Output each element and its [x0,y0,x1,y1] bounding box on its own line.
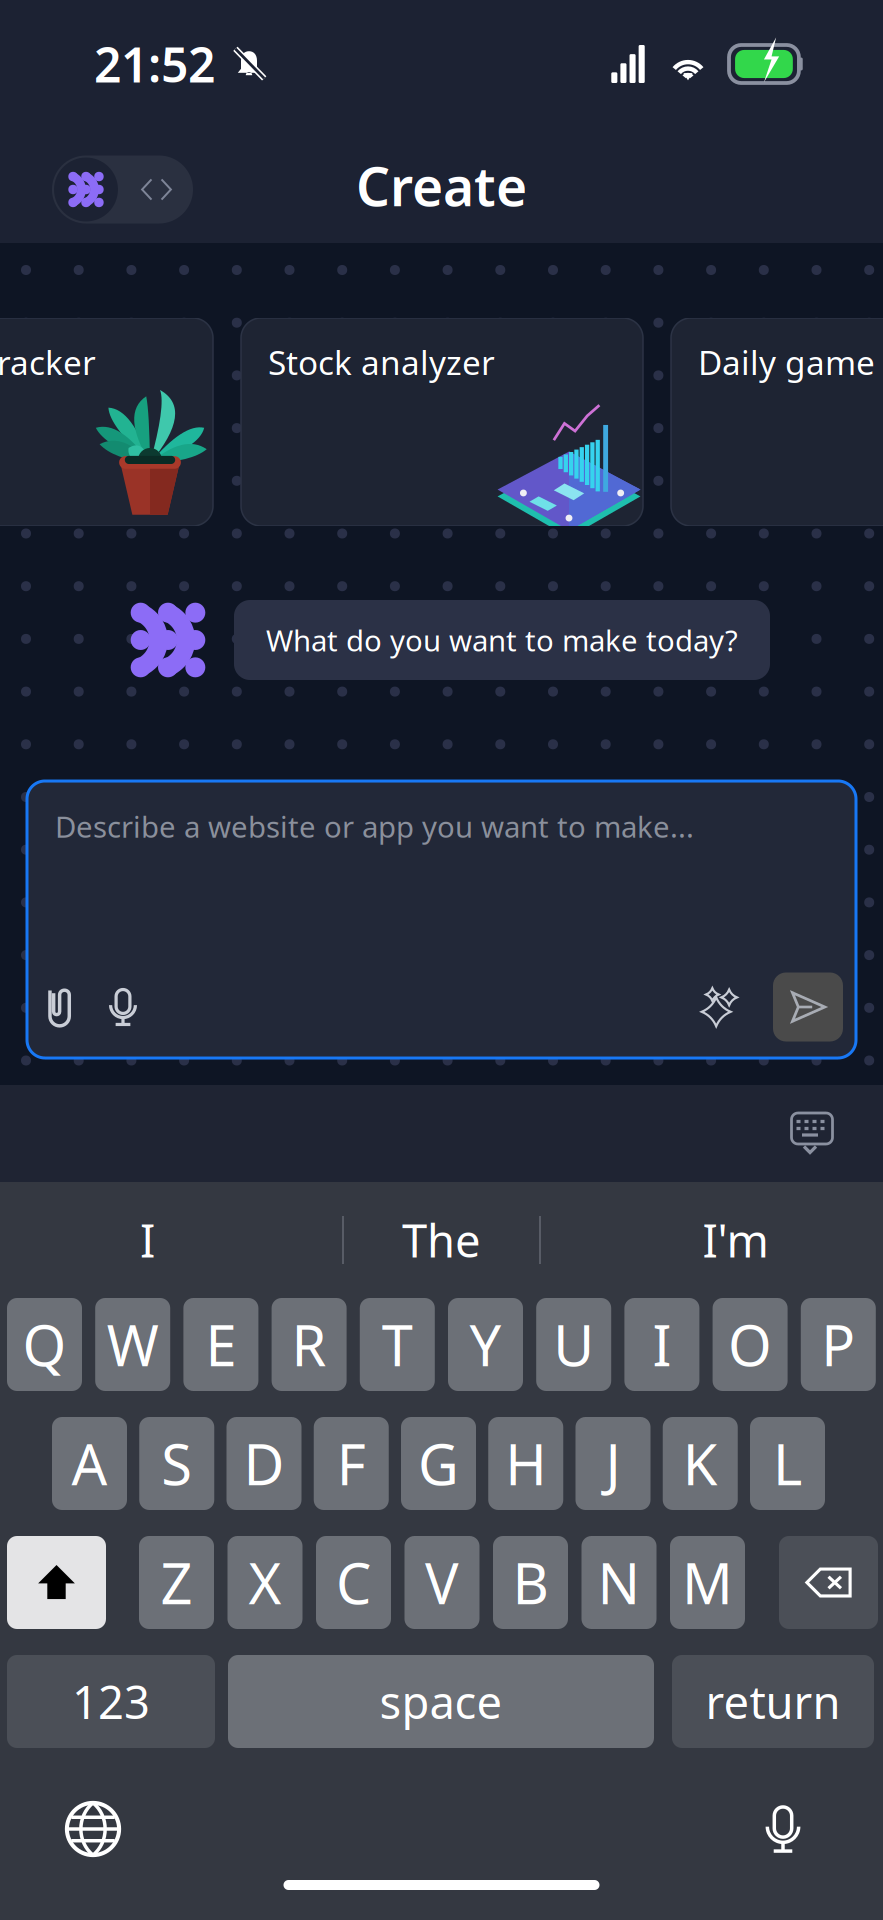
button[interactable]: Delete [779,1536,878,1629]
button[interactable]: W [95,1298,170,1391]
staticText: My plant tracker [0,340,96,384]
staticText: I [140,1210,155,1270]
staticText: D [243,1426,284,1501]
staticText: return [705,1671,840,1732]
button[interactable]: O [713,1298,788,1391]
button[interactable]: A [52,1417,127,1510]
button[interactable]: Shift [7,1536,106,1629]
button[interactable]: X [227,1536,302,1629]
button[interactable]: B [493,1536,568,1629]
staticText: U [553,1307,594,1382]
button[interactable]: T [360,1298,435,1391]
staticText: C [336,1545,371,1620]
button[interactable]: Mode switcher [52,155,193,223]
button[interactable]: J [575,1417,650,1510]
button[interactable]: L [750,1417,825,1510]
staticText: M [682,1545,733,1620]
button[interactable]: H [488,1417,563,1510]
staticText: W [107,1307,159,1382]
button[interactable]: I [624,1298,699,1391]
button[interactable]: K [663,1417,738,1510]
staticText: Y [469,1307,501,1382]
staticText: E [205,1307,236,1382]
button[interactable]: Q [7,1298,82,1391]
button[interactable]: V [404,1536,479,1629]
button[interactable]: Change keyboard [64,1800,122,1858]
button[interactable]: R [272,1298,347,1391]
staticText: H [505,1426,546,1501]
button[interactable]: E [183,1298,258,1391]
staticText: Q [22,1307,66,1382]
button[interactable]: F [314,1417,389,1510]
button[interactable]: Hide keyboard [787,1108,837,1158]
staticText: Describe a website or app you want to ma… [55,807,694,846]
staticText: Create [356,150,527,221]
button[interactable]: 123 [7,1655,215,1748]
button[interactable]: S [139,1417,214,1510]
staticText: K [683,1426,718,1501]
staticText: A [71,1426,107,1501]
button[interactable]: Dictation [754,1800,812,1858]
button[interactable]: G [401,1417,476,1510]
button[interactable]: space [228,1655,654,1748]
staticText: What do you want to make today? [266,620,738,659]
button[interactable]: N [581,1536,656,1629]
button[interactable]: I'm [588,1192,882,1288]
button[interactable]: U [536,1298,611,1391]
button[interactable]: The [294,1192,588,1288]
staticText: space [379,1671,502,1732]
staticText: S [161,1426,192,1501]
staticText: 123 [72,1671,150,1732]
staticText: Stock analyzer [268,340,495,384]
button[interactable]: I [0,1192,294,1288]
button[interactable]: Y [448,1298,523,1391]
staticText: I'm [702,1210,768,1270]
staticText: G [418,1426,459,1501]
button[interactable]: Attach file [38,972,84,1042]
button[interactable]: C [316,1536,391,1629]
button[interactable]: Dictate [100,972,146,1042]
staticText: X [248,1545,281,1620]
staticText: L [773,1426,802,1501]
button[interactable]: M [670,1536,745,1629]
button[interactable]: D [226,1417,301,1510]
staticText: R [292,1307,327,1382]
staticText: J [605,1426,620,1501]
staticText: T [382,1307,413,1382]
staticText: V [425,1545,459,1620]
staticText: F [337,1426,366,1501]
staticText: Z [160,1545,192,1620]
staticText: 21:52 [94,32,215,96]
staticText: Daily game ch [698,340,883,384]
staticText: The [402,1210,481,1270]
button[interactable]: return [672,1655,874,1748]
staticText: N [597,1545,640,1620]
button[interactable]: Z [139,1536,214,1629]
button[interactable]: Enhance prompt [697,972,745,1042]
button[interactable]: P [801,1298,876,1391]
button[interactable]: Send [773,972,843,1042]
staticText: P [821,1307,855,1382]
staticText: B [512,1545,548,1620]
staticText: O [728,1307,772,1382]
staticText: I [652,1307,671,1382]
